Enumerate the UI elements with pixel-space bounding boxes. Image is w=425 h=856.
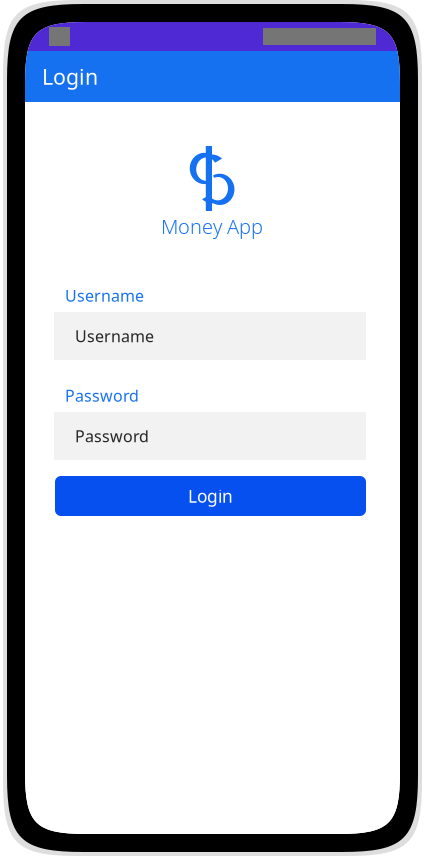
staticText: Password xyxy=(65,385,139,406)
button[interactable]: Password xyxy=(54,412,366,460)
staticText: Password xyxy=(75,425,149,447)
staticText: Login xyxy=(42,62,98,91)
button[interactable]: Username xyxy=(54,312,366,360)
staticText: Username xyxy=(65,285,144,306)
staticText: Username xyxy=(75,325,154,347)
staticText: Login xyxy=(188,484,233,507)
button[interactable]: Login xyxy=(55,476,366,516)
staticText: Money App xyxy=(161,213,263,240)
